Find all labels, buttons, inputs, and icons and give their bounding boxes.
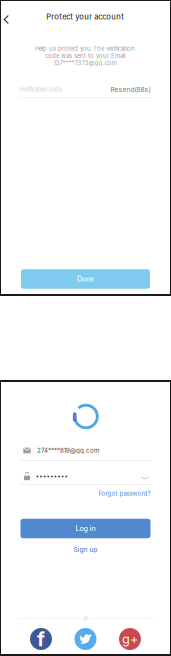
staticText: Resend(88s) [110, 85, 150, 94]
button[interactable]: Forgot password? [98, 488, 150, 499]
staticText: Help us protect you.The verification [35, 45, 135, 52]
button[interactable]: Log in [20, 519, 150, 538]
button[interactable]: Sign up [73, 543, 97, 556]
button[interactable]: Show password [137, 470, 153, 482]
button[interactable]: Done [21, 269, 150, 289]
staticText: 137****7373@qq.com [53, 59, 116, 67]
staticText: f [37, 627, 45, 651]
button[interactable]: Sign in with Twitter [74, 628, 96, 650]
staticText: 274****819@qq.com [37, 447, 99, 454]
staticText: Protect your account [46, 12, 124, 21]
staticText: code was sent to your Email [45, 52, 125, 59]
staticText: or [83, 615, 88, 622]
staticText: Done [77, 275, 94, 283]
button[interactable]: Sign in with Google Plus [119, 628, 141, 650]
staticText: Verification code [19, 86, 62, 93]
staticText: g+ [122, 631, 138, 647]
button[interactable]: Back [0, 8, 16, 30]
button[interactable]: Resend(88s) [108, 82, 152, 97]
staticText: Forgot password? [98, 490, 150, 497]
button[interactable]: Sign in with Facebook [30, 628, 52, 650]
staticText: Log in [75, 524, 95, 533]
staticText: Sign up [73, 545, 97, 553]
